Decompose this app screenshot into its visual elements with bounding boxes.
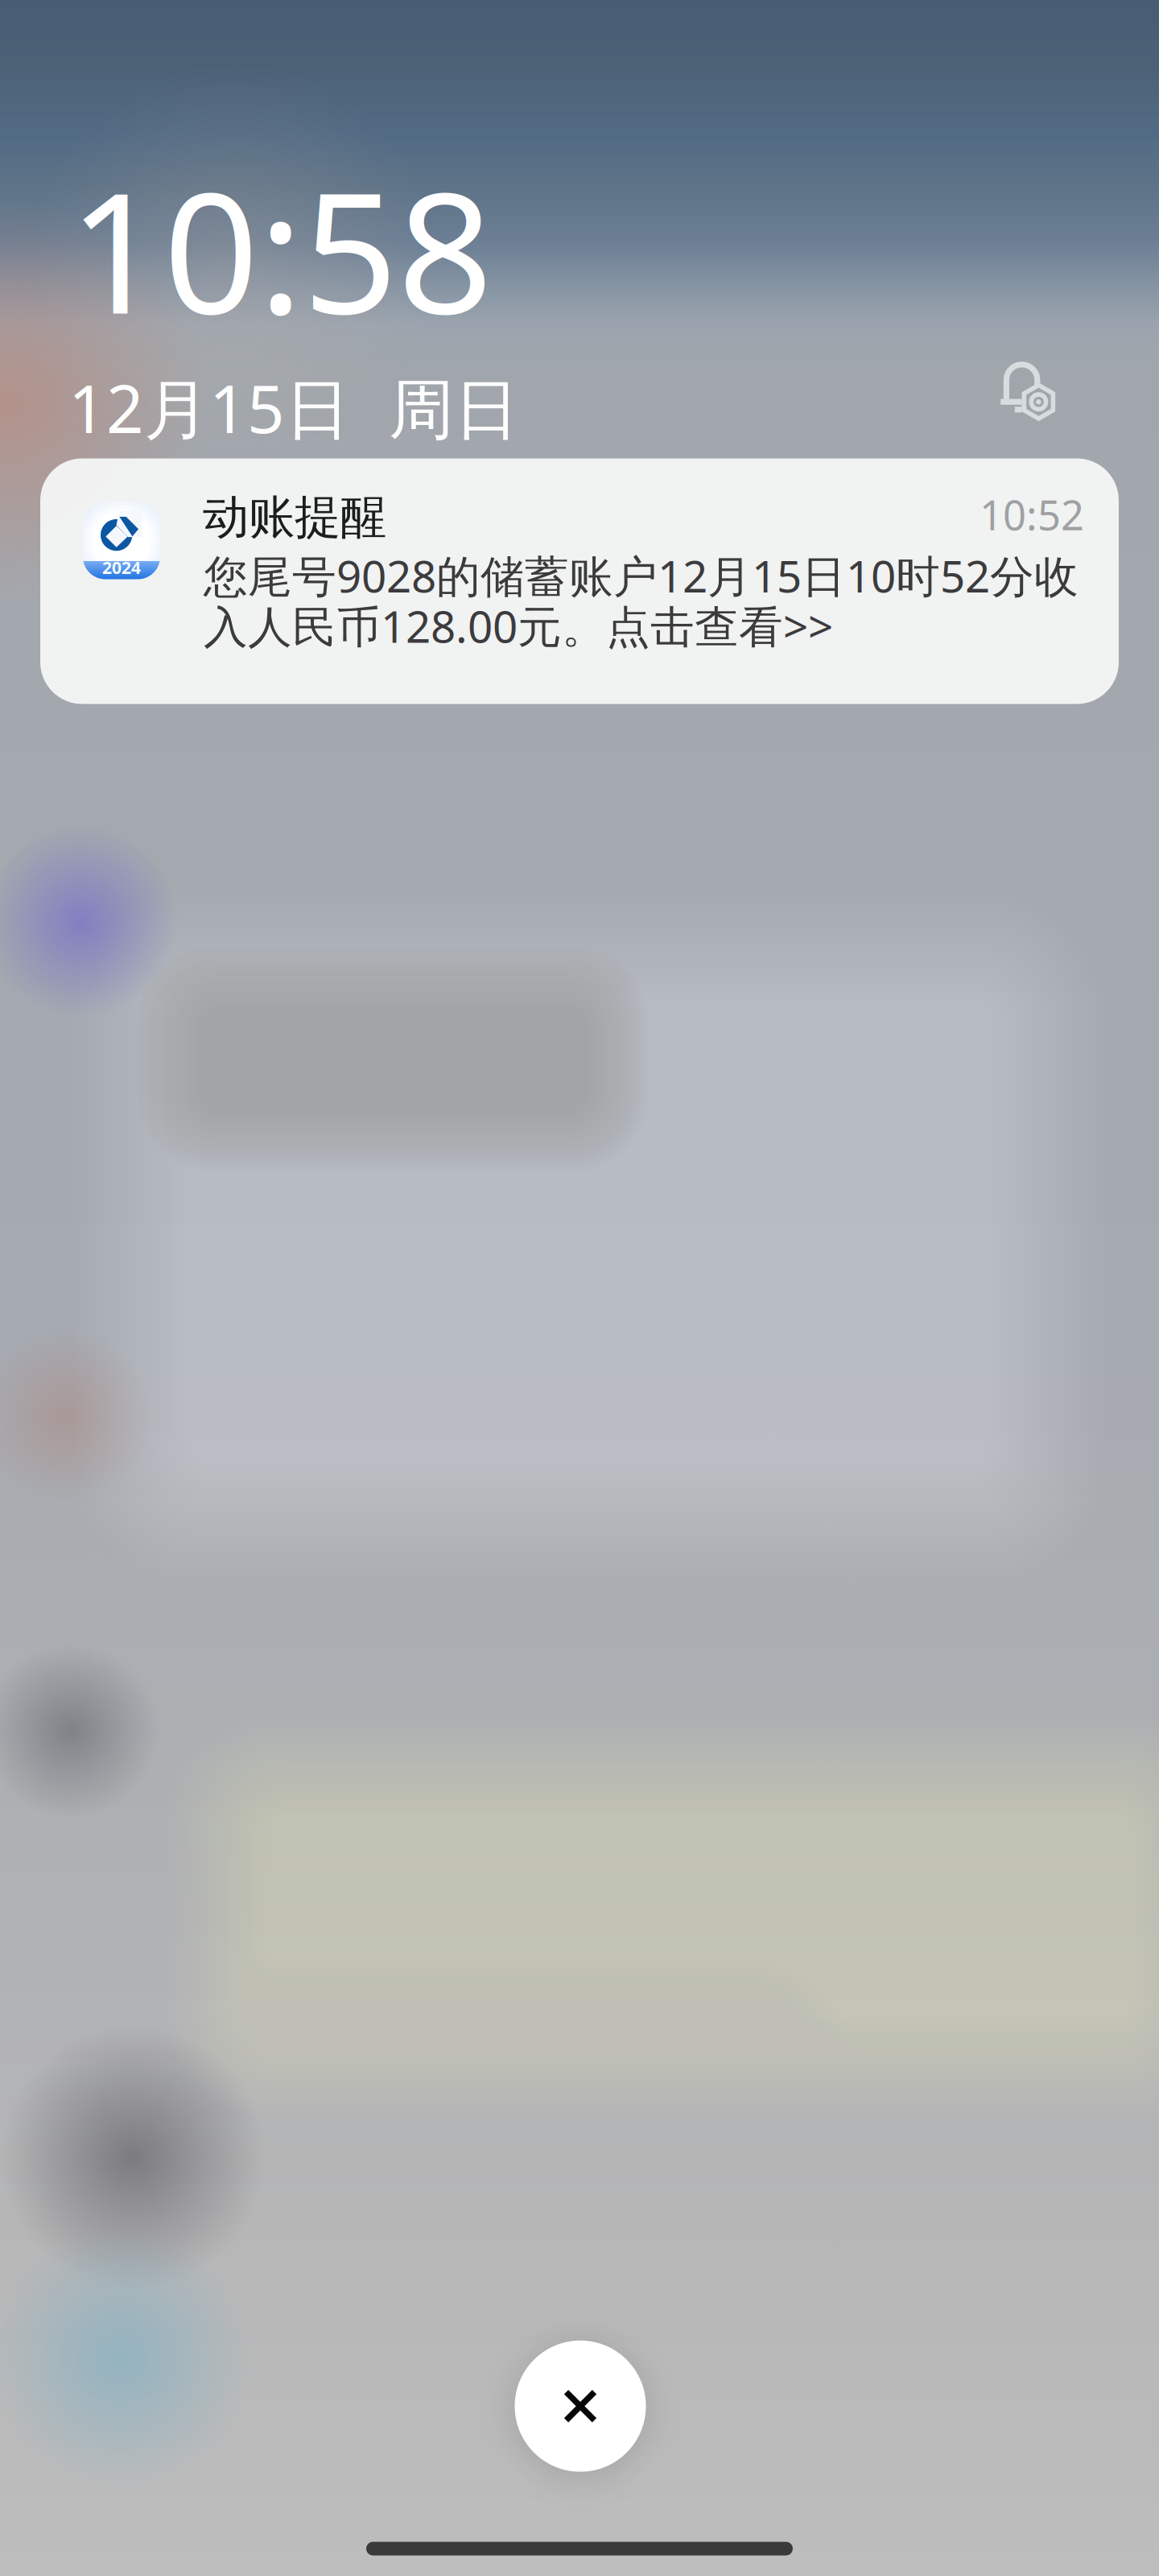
- staticText: 您尾号9028的储蓄账户12月15日10时52分收 入人民币128.00元。点击…: [204, 546, 1079, 655]
- button[interactable]: Close: [515, 2341, 646, 2472]
- staticText: 动账提醒: [203, 489, 386, 546]
- staticText: 10:52: [980, 487, 1084, 542]
- button[interactable]: 2024: [40, 458, 1119, 704]
- button[interactable]: Notification settings: [988, 354, 1056, 422]
- staticText: 2024: [102, 556, 141, 579]
- staticText: 10:58: [68, 138, 493, 359]
- staticText: 12月15日 周日: [68, 364, 519, 451]
